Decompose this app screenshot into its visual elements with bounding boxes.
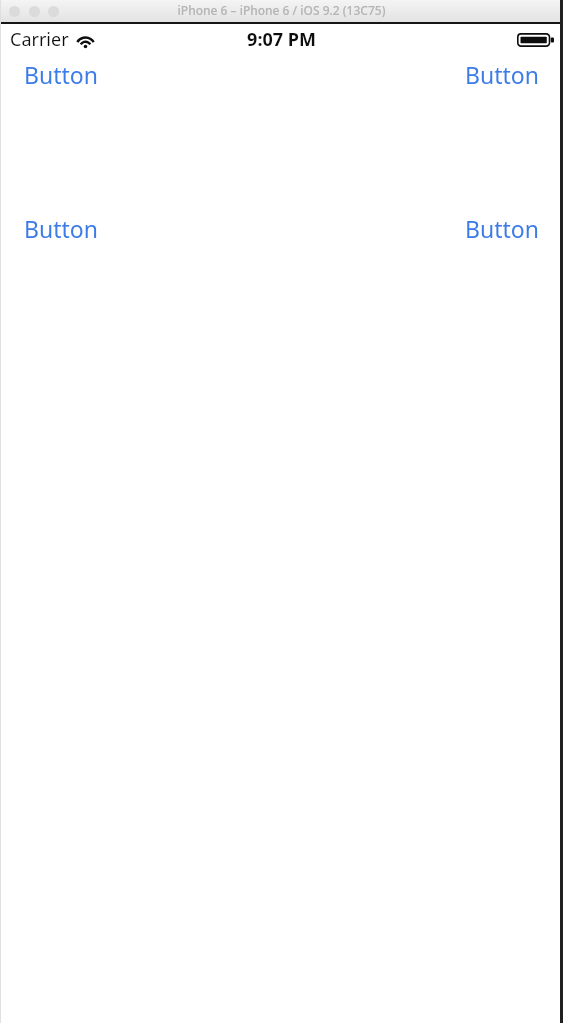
button[interactable]: Zoom	[48, 6, 59, 17]
staticText: Button	[465, 213, 539, 241]
button[interactable]: Button	[451, 211, 553, 243]
other: Battery full	[517, 32, 554, 48]
button[interactable]: Button	[451, 57, 553, 89]
staticText: Carrier	[10, 27, 69, 52]
other: Wi-Fi	[75, 32, 96, 48]
staticText: iPhone 6 – iPhone 6 / iOS 9.2 (13C75)	[0, 2, 563, 18]
staticText: Button	[24, 213, 98, 241]
staticText: 9:07 PM	[0, 27, 563, 52]
button[interactable]: Button	[10, 211, 112, 243]
staticText: Button	[465, 59, 539, 87]
staticText: Button	[24, 59, 98, 87]
button[interactable]: Close	[9, 6, 20, 17]
button[interactable]: Minimize	[29, 6, 40, 17]
button[interactable]: Button	[10, 57, 112, 89]
